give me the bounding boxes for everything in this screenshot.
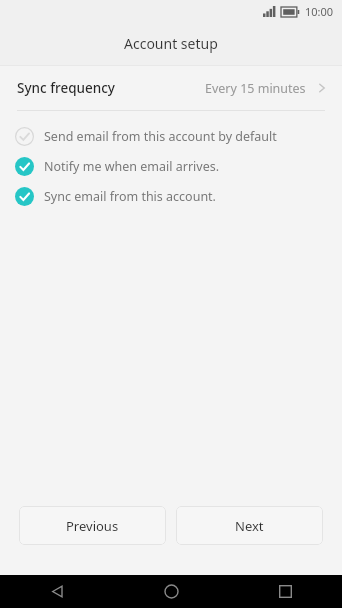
staticText: Every 15 minutes <box>205 80 306 97</box>
staticText: Next <box>235 517 264 535</box>
staticText: Send email from this account by default <box>44 128 277 145</box>
staticText: Notify me when email arrives. <box>44 158 220 175</box>
staticText: Sync frequency <box>17 79 115 97</box>
button[interactable]: Send email from this account by default <box>0 121 342 151</box>
button[interactable]: Next <box>176 506 323 545</box>
staticText: Previous <box>66 517 119 535</box>
button[interactable]: Previous <box>19 506 166 545</box>
staticText: Account setup <box>124 34 218 53</box>
button[interactable]: Sync email from this account. <box>0 181 342 211</box>
staticText: 10:00 <box>305 4 334 19</box>
button[interactable]: Notify me when email arrives. <box>0 151 342 181</box>
other: Open <box>314 80 330 96</box>
button[interactable]: Home <box>114 575 228 608</box>
button[interactable]: Back <box>0 575 114 608</box>
button[interactable]: Recents <box>228 575 342 608</box>
staticText: Sync email from this account. <box>44 188 216 205</box>
button[interactable]: Sync frequency <box>0 66 342 110</box>
